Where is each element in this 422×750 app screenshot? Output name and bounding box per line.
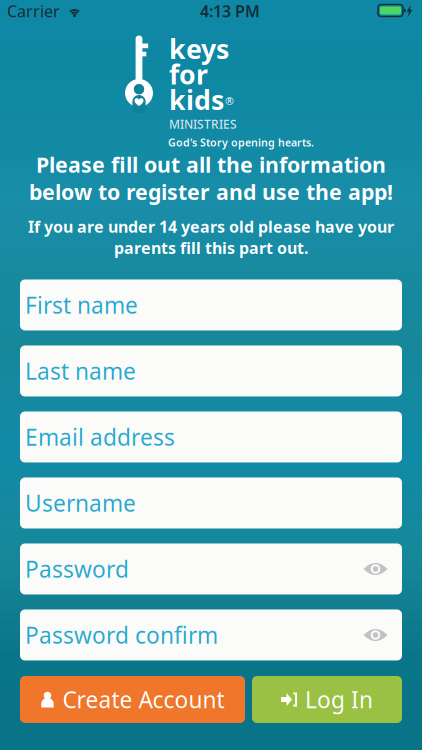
staticText: Carrier — [7, 0, 60, 22]
staticText: ® — [225, 94, 234, 108]
staticText: Log In — [305, 684, 373, 714]
staticText: MINISTRIES — [169, 116, 237, 132]
staticText: Create Account — [62, 684, 224, 714]
staticText: kids — [169, 82, 224, 117]
staticText: keys — [169, 31, 229, 66]
button[interactable]: Log In — [252, 676, 402, 723]
staticText: Last name — [25, 356, 136, 386]
button[interactable]: Username — [20, 477, 402, 528]
button[interactable]: Password confirm — [20, 609, 402, 660]
staticText: 4:13 PM — [200, 0, 260, 22]
button[interactable]: Last name — [20, 345, 402, 396]
staticText: below to register and use the app! — [29, 178, 393, 206]
staticText: Email address — [25, 422, 175, 452]
button[interactable]: Password — [20, 543, 402, 594]
staticText: for — [169, 56, 208, 92]
staticText: parents fill this part out. — [114, 237, 308, 258]
staticText: Username — [25, 488, 136, 518]
staticText: Password — [25, 554, 129, 584]
button[interactable]: Create Account — [20, 676, 245, 723]
staticText: If you are under 14 years old please hav… — [28, 216, 394, 237]
button[interactable]: First name — [20, 279, 402, 330]
staticText: God's Story opening hearts. — [168, 135, 314, 149]
staticText: Please fill out all the information — [36, 150, 386, 179]
button[interactable]: Email address — [20, 411, 402, 462]
staticText: First name — [25, 290, 138, 320]
staticText: Password confirm — [25, 620, 218, 650]
